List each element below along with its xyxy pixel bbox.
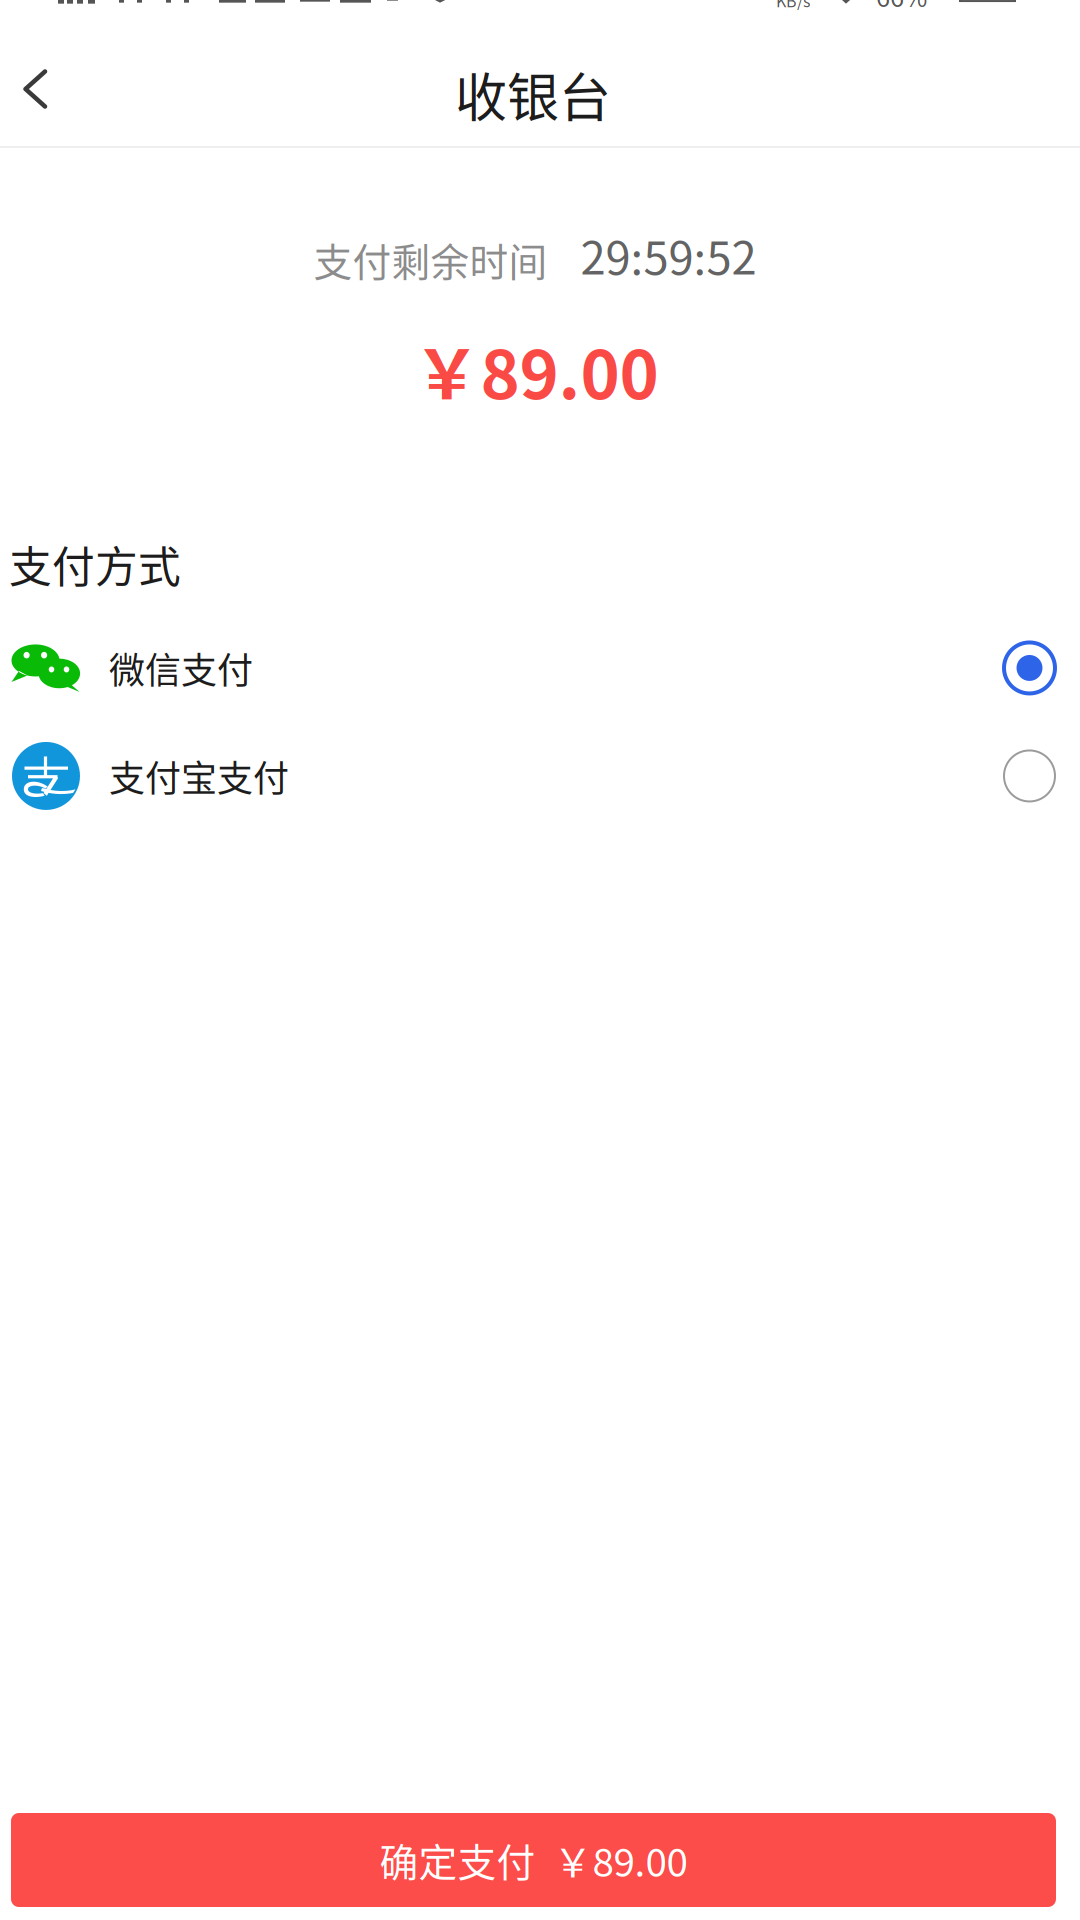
staticText: 支付剩余时间 — [313, 232, 547, 288]
staticText: 支付方式 — [9, 533, 181, 595]
staticText: 收银台 — [455, 56, 611, 132]
button[interactable]: 支付宝支付 — [0, 722, 1080, 830]
staticText: 微信支付 — [109, 642, 253, 694]
staticText: 29:59:52 — [580, 222, 756, 288]
staticText: 确定支付 ￥89.00 — [379, 1832, 687, 1888]
staticText: KB/s — [776, 0, 810, 12]
staticText: 支付宝支付 — [109, 750, 289, 802]
staticText: 66% — [876, 0, 927, 14]
button[interactable]: Back — [0, 29, 86, 149]
button[interactable]: 微信支付 — [0, 614, 1080, 722]
button[interactable]: 确定支付 ￥89.00 — [11, 1813, 1056, 1907]
staticText: ￥89.00 — [413, 322, 658, 418]
